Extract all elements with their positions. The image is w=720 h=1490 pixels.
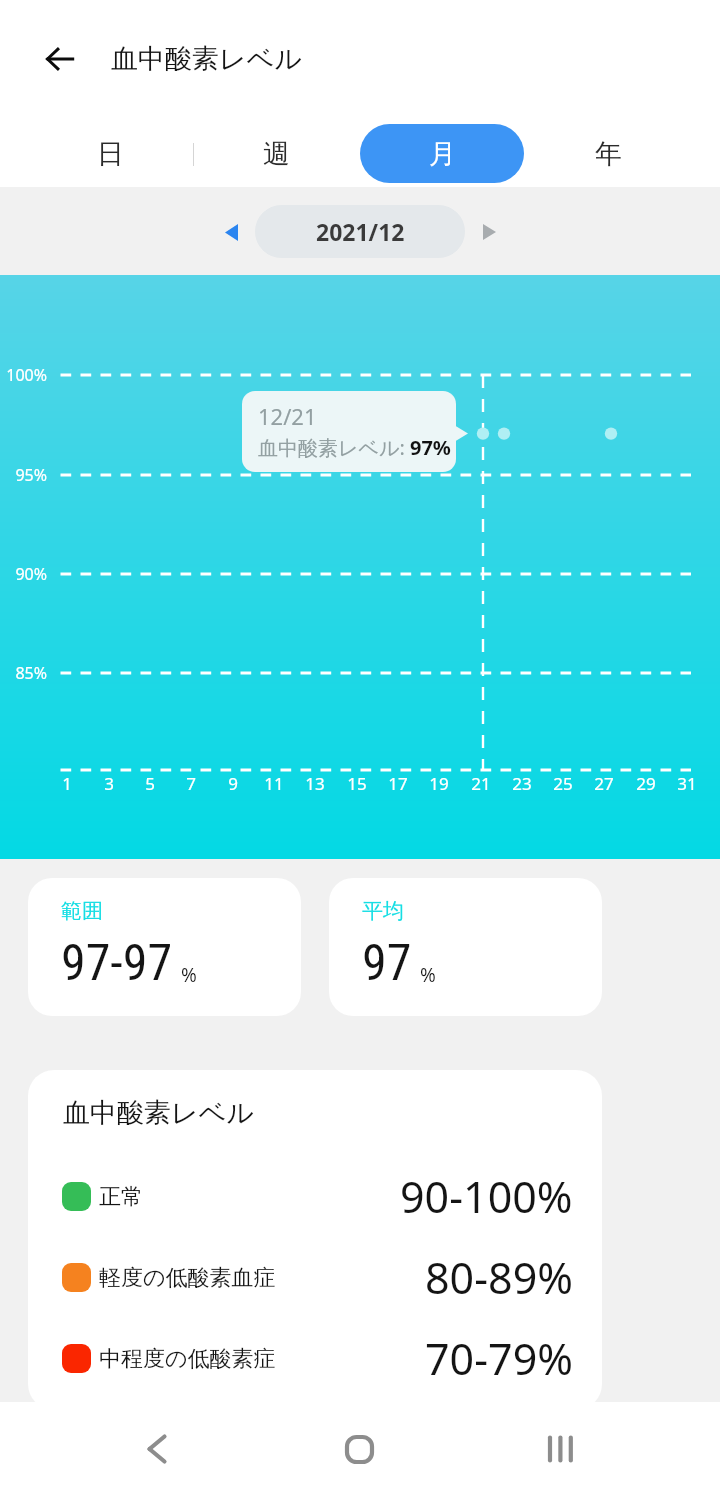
staticText: 17 [378, 772, 418, 795]
staticText: 2021/12 [316, 216, 405, 247]
staticText: % [181, 962, 197, 988]
staticText: 90-100% [400, 1167, 573, 1226]
staticText: 23 [502, 772, 542, 795]
staticText: % [420, 962, 436, 988]
staticText: 軽度の低酸素血症 [99, 1264, 276, 1292]
button[interactable]: Back [24, 23, 96, 95]
button[interactable]: Previous month [208, 209, 254, 255]
button[interactable]: 軽度の低酸素血症 [28, 1237, 602, 1318]
staticText: 90% [0, 563, 47, 585]
staticText: 1 [47, 772, 87, 795]
staticText: 3 [89, 772, 129, 795]
staticText: 19 [419, 772, 459, 795]
staticText: 97-97 [61, 934, 173, 993]
staticText: 血中酸素レベル [63, 1096, 254, 1130]
staticText: 日 [97, 137, 124, 171]
staticText: 21 [461, 772, 501, 795]
staticText: 平均 [362, 898, 404, 924]
button[interactable]: Back [117, 1409, 197, 1489]
staticText: 100% [0, 364, 47, 386]
staticText: 31 [667, 772, 707, 795]
staticText: 範囲 [61, 898, 103, 924]
staticText: 70-79% [425, 1329, 573, 1388]
staticText: 週 [263, 137, 290, 171]
staticText: 15 [337, 772, 377, 795]
button[interactable]: 正常 [28, 1156, 602, 1237]
staticText: 月 [429, 137, 456, 171]
staticText: 11 [254, 772, 294, 795]
button[interactable]: 平均 [329, 878, 602, 1016]
button[interactable]: 範囲 [28, 878, 301, 1016]
button[interactable]: 日 [28, 124, 192, 183]
staticText: 血中酸素レベル: 97% [258, 434, 451, 461]
staticText: 80-89% [425, 1248, 573, 1307]
staticText: 7 [171, 772, 211, 795]
staticText: 中程度の低酸素症 [99, 1345, 276, 1373]
staticText: 29 [626, 772, 666, 795]
staticText: 95% [0, 464, 47, 486]
staticText: 97 [362, 934, 412, 993]
staticText: 年 [595, 137, 622, 171]
staticText: 正常 [99, 1183, 143, 1211]
staticText: 27 [584, 772, 624, 795]
staticText: 12/21 [258, 401, 317, 431]
staticText: 13 [295, 772, 335, 795]
button[interactable]: 中程度の低酸素症 [28, 1318, 602, 1399]
button[interactable]: 年 [526, 124, 690, 183]
staticText: 9 [213, 772, 253, 795]
staticText: 85% [0, 662, 47, 684]
button[interactable]: Home [319, 1409, 399, 1489]
button[interactable]: Recent apps [520, 1409, 600, 1489]
staticText: 5 [130, 772, 170, 795]
button[interactable]: Next month [466, 209, 512, 255]
staticText: 25 [543, 772, 583, 795]
button[interactable]: 月 [360, 124, 524, 183]
staticText: 血中酸素レベル [111, 42, 302, 76]
button[interactable]: 2021/12 [255, 205, 465, 258]
button[interactable]: 週 [194, 124, 358, 183]
